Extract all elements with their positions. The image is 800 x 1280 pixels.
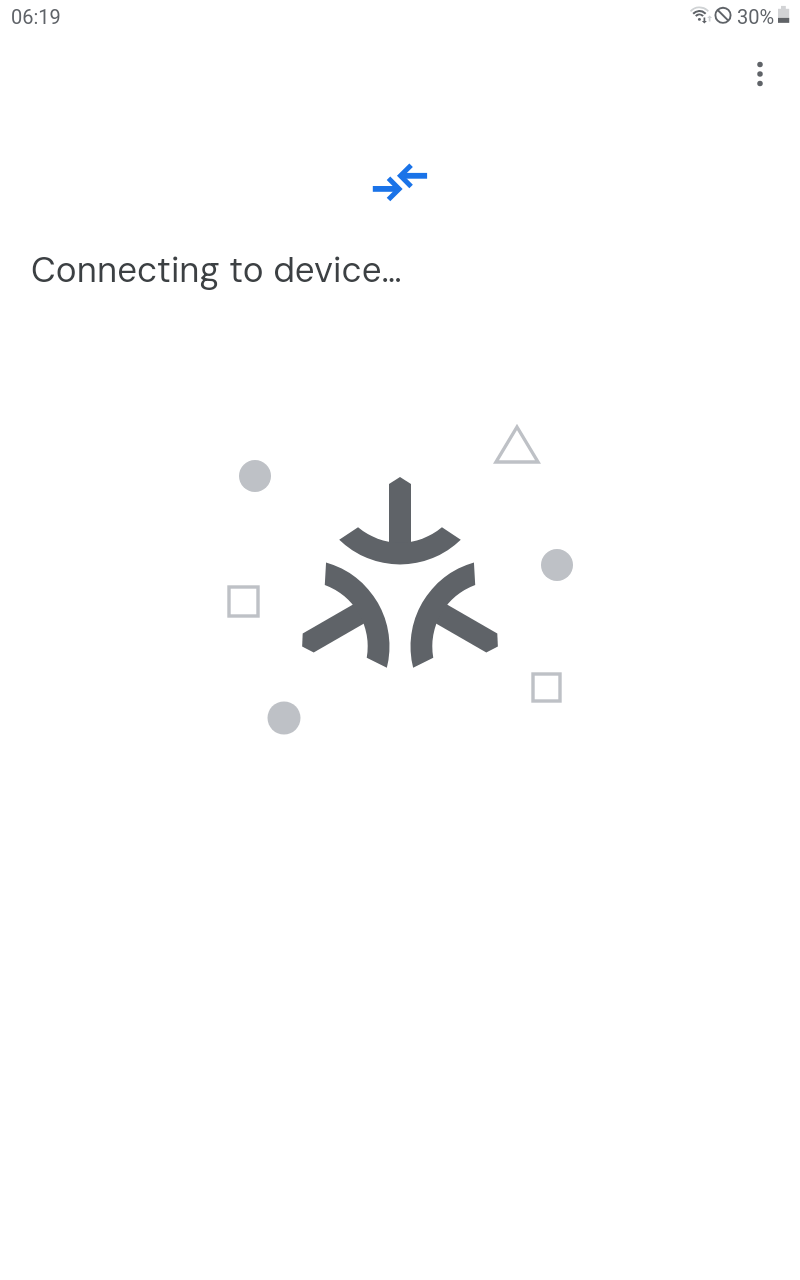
- button[interactable]: More options: [736, 50, 784, 98]
- staticText: 06:19: [11, 5, 61, 28]
- staticText: Connecting to device…: [31, 247, 402, 293]
- staticText: 30%: [737, 5, 775, 28]
